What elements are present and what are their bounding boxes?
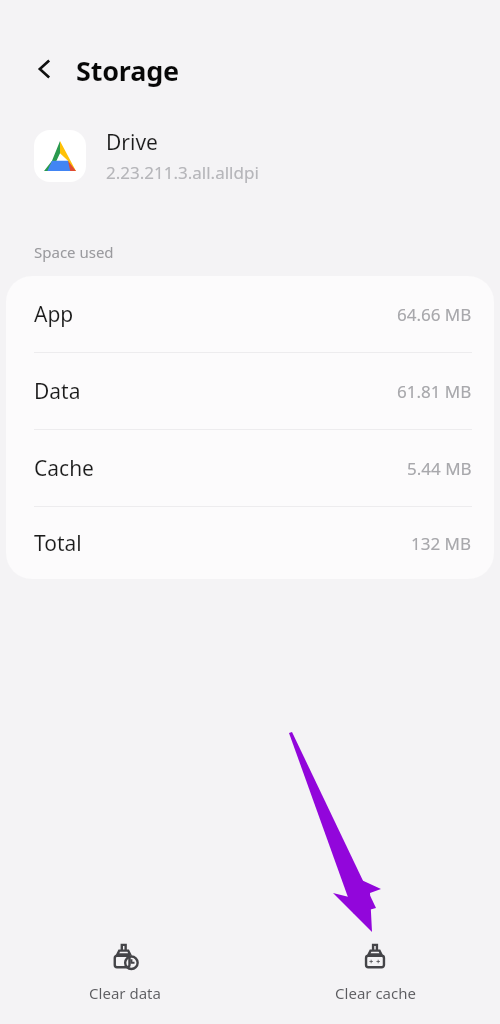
button[interactable]: App — [6, 276, 494, 352]
staticText: Storage — [76, 52, 179, 89]
staticText: Clear cache — [335, 983, 416, 1003]
staticText: Data — [34, 377, 81, 406]
button[interactable]: Cache — [6, 430, 494, 506]
button[interactable]: Clear cache — [250, 933, 500, 1011]
staticText: Clear data — [89, 983, 161, 1003]
staticText: 64.66 MB — [397, 303, 472, 326]
staticText: App — [34, 300, 74, 329]
staticText: 2.23.211.3.all.alldpi — [106, 161, 259, 184]
button[interactable]: Back — [22, 46, 68, 92]
staticText: Cache — [34, 454, 94, 483]
button[interactable]: Total — [6, 507, 494, 579]
staticText: Space used — [34, 242, 114, 262]
staticText: Drive — [106, 128, 158, 157]
staticText: 132 MB — [411, 532, 472, 555]
button[interactable]: Data — [6, 353, 494, 429]
staticText: Total — [34, 529, 82, 558]
staticText: 61.81 MB — [397, 380, 472, 403]
button[interactable]: Clear data — [0, 933, 250, 1011]
staticText: 5.44 MB — [407, 457, 472, 480]
